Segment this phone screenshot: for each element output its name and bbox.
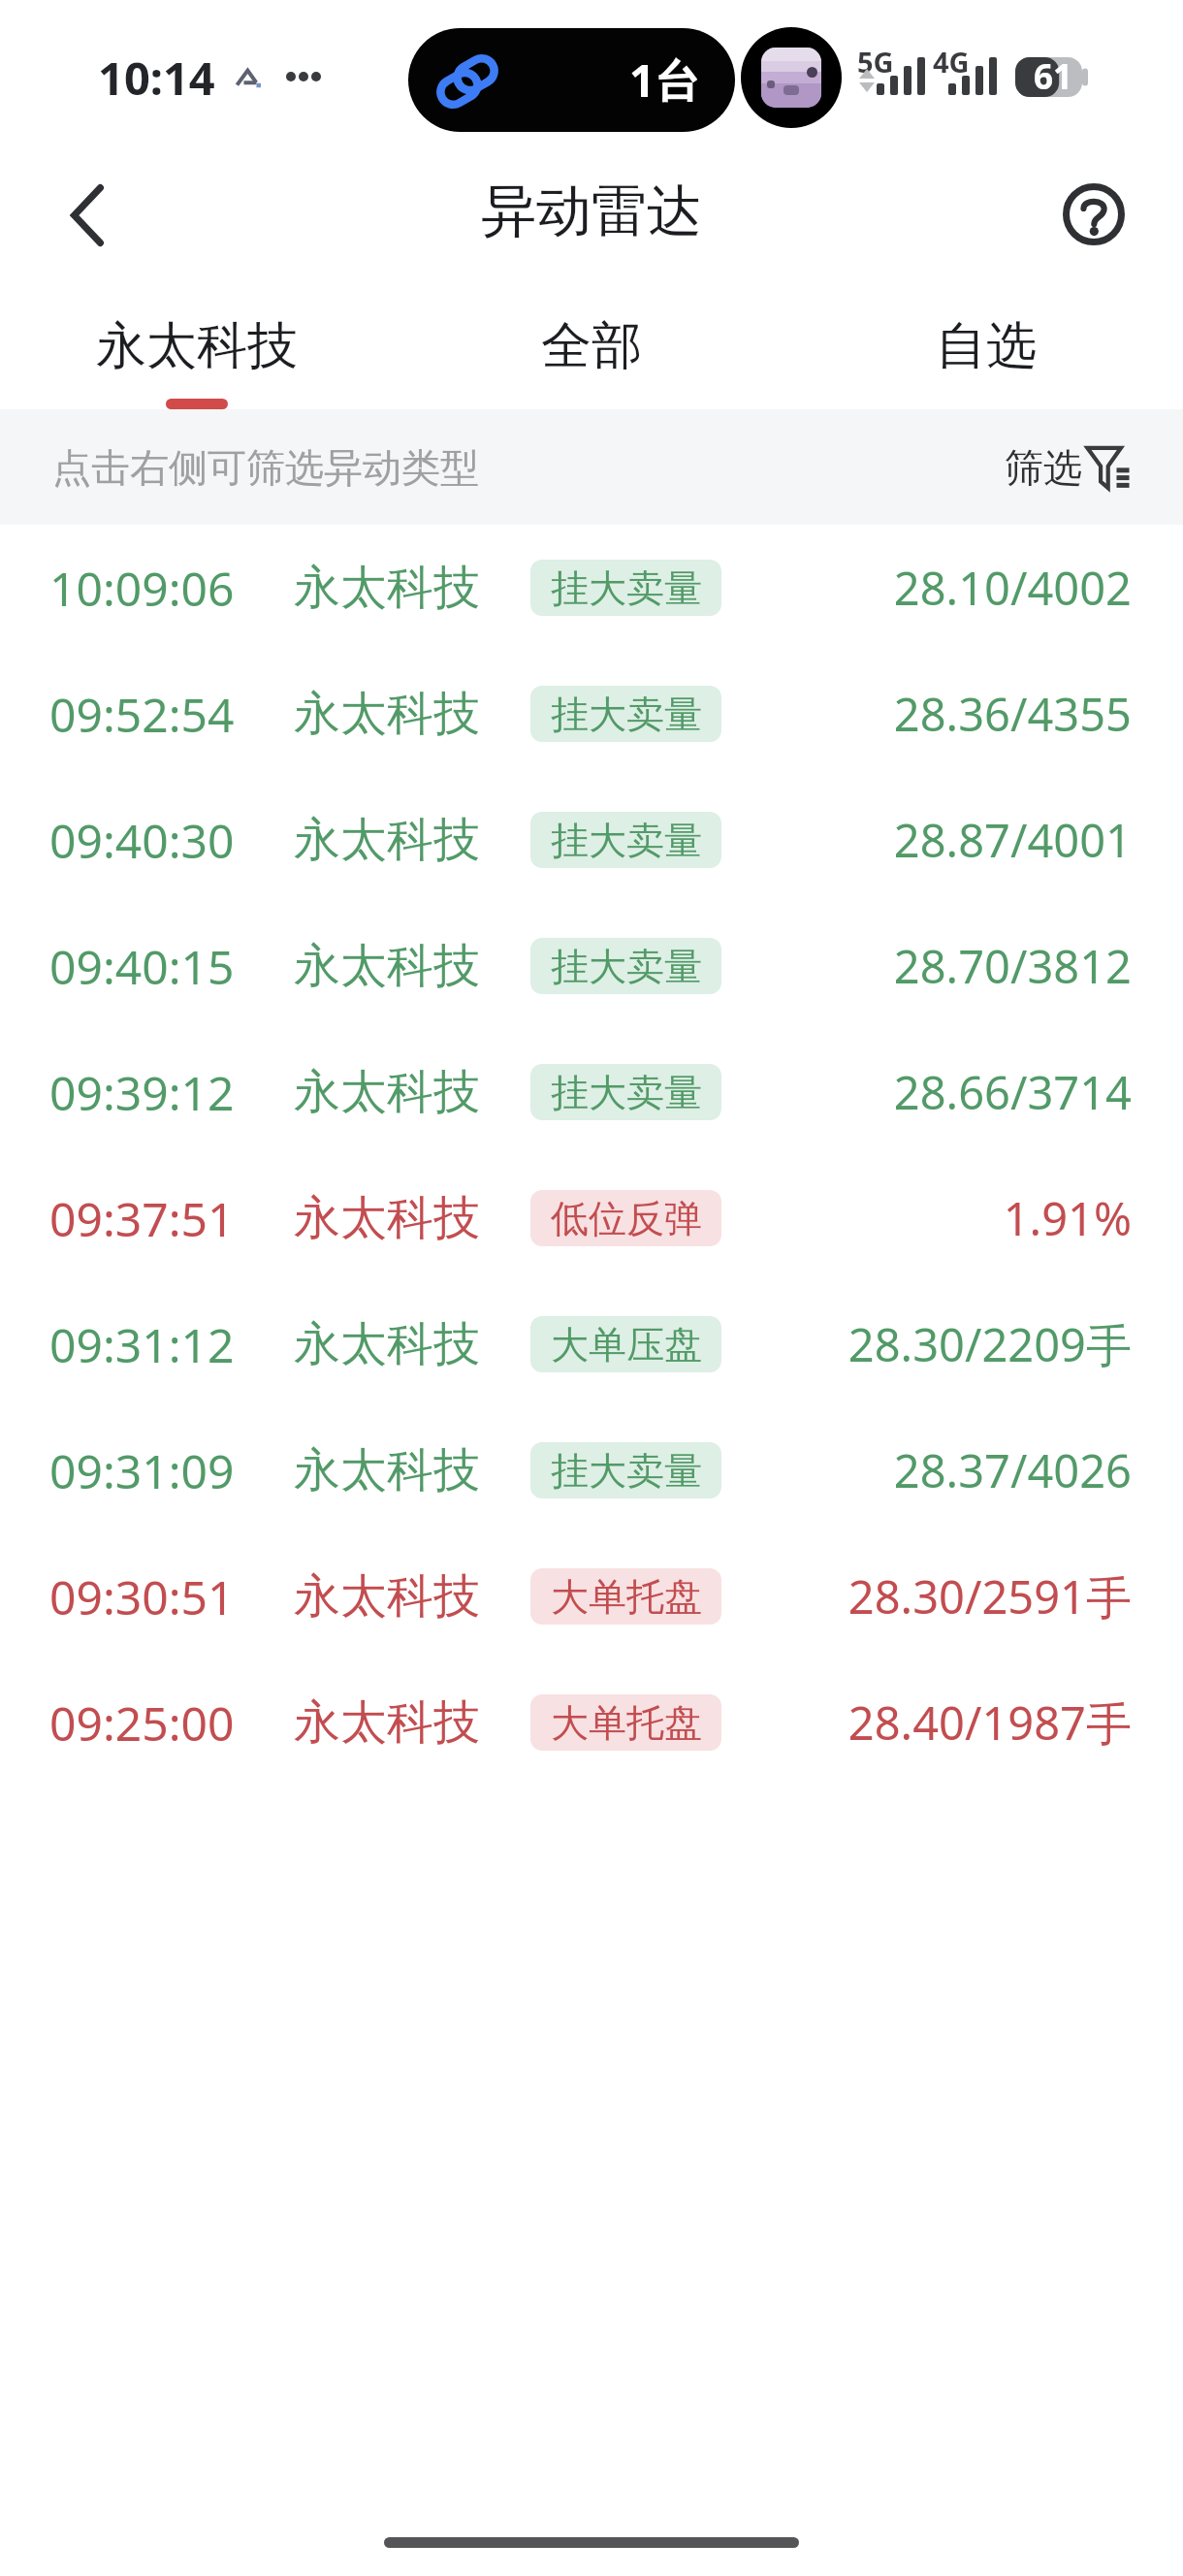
staticText: 28.37/4026 [893, 1439, 1132, 1501]
staticText: 自选 [936, 314, 1037, 378]
staticText: 挂大卖量 [551, 1447, 702, 1495]
button[interactable]: 10:09:06 [0, 525, 1183, 651]
button[interactable]: Back [24, 148, 150, 274]
staticText: 28.10/4002 [893, 557, 1132, 619]
staticText: 永太科技 [294, 1441, 480, 1499]
staticText: 永太科技 [294, 1315, 480, 1373]
staticText: 全部 [541, 314, 642, 378]
staticText: 永太科技 [294, 1567, 480, 1626]
staticText: 09:31:09 [49, 1439, 235, 1502]
staticText: 4G [933, 43, 970, 80]
button[interactable]: 09:40:15 [0, 903, 1183, 1029]
staticText: 挂大卖量 [551, 943, 702, 990]
button[interactable]: 09:52:54 [0, 651, 1183, 777]
button[interactable]: 全部 [394, 277, 788, 409]
staticText: 永太科技 [294, 1063, 480, 1121]
button[interactable]: 09:31:09 [0, 1407, 1183, 1533]
staticText: 28.70/3812 [893, 935, 1132, 997]
staticText: 09:30:51 [49, 1565, 235, 1628]
staticText: 大单压盘 [551, 1321, 702, 1368]
staticText: 永太科技 [294, 1189, 480, 1247]
staticText: 永太科技 [294, 685, 480, 743]
staticText: 09:52:54 [49, 683, 235, 746]
staticText: 28.36/4355 [893, 683, 1132, 745]
staticText: 28.40/1987手 [847, 1691, 1132, 1754]
staticText: 永太科技 [294, 1693, 480, 1752]
button[interactable]: 09:30:51 [0, 1533, 1183, 1659]
staticText: 28.30/2209手 [847, 1313, 1132, 1375]
staticText: 28.30/2591手 [847, 1565, 1132, 1627]
staticText: 61 [1034, 53, 1073, 100]
button[interactable]: Help [1036, 153, 1152, 270]
staticText: 永太科技 [294, 811, 480, 869]
staticText: 1.91% [1003, 1187, 1132, 1249]
staticText: 挂大卖量 [551, 817, 702, 864]
staticText: 1台 [629, 49, 700, 111]
staticText: 挂大卖量 [551, 564, 702, 612]
staticText: 09:25:00 [49, 1691, 235, 1755]
staticText: 挂大卖量 [551, 1069, 702, 1116]
staticText: 筛选 [1005, 443, 1082, 492]
button[interactable]: 09:40:30 [0, 777, 1183, 903]
button[interactable]: 09:31:12 [0, 1281, 1183, 1407]
staticText: 挂大卖量 [551, 691, 702, 738]
button[interactable]: 自选 [788, 277, 1183, 409]
staticText: 点击右侧可筛选异动类型 [52, 443, 479, 492]
staticText: 低位反弹 [551, 1195, 702, 1242]
button[interactable]: 筛选 [1005, 443, 1130, 492]
staticText: 永太科技 [294, 937, 480, 995]
staticText: 永太科技 [96, 314, 298, 378]
staticText: 10:14 [98, 47, 215, 109]
staticText: 5G [857, 43, 894, 80]
staticText: 09:40:30 [49, 809, 235, 872]
button[interactable]: 09:37:51 [0, 1155, 1183, 1281]
staticText: 大单托盘 [551, 1699, 702, 1747]
staticText: 28.87/4001 [893, 809, 1132, 871]
staticText: 大单托盘 [551, 1573, 702, 1621]
staticText: 异动雷达 [481, 177, 702, 246]
staticText: 10:09:06 [49, 557, 235, 620]
staticText: 09:40:15 [49, 935, 235, 998]
button[interactable]: 永太科技 [0, 277, 394, 409]
staticText: 09:31:12 [49, 1313, 235, 1376]
staticText: 09:37:51 [49, 1187, 235, 1250]
button[interactable]: 09:39:12 [0, 1029, 1183, 1155]
button[interactable]: 09:25:00 [0, 1659, 1183, 1786]
staticText: 28.66/3714 [893, 1061, 1132, 1123]
staticText: 09:39:12 [49, 1061, 235, 1124]
staticText: 永太科技 [294, 559, 480, 617]
